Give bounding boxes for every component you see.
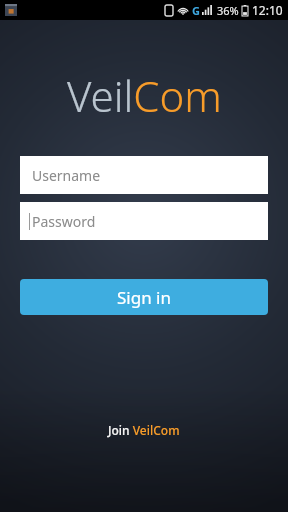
button[interactable]: Password [20, 202, 268, 240]
staticText: G [192, 3, 200, 18]
staticText: VeilCom [67, 67, 222, 124]
staticText: Password [32, 212, 96, 231]
staticText: Username [32, 166, 101, 185]
staticText: 36% [217, 3, 239, 18]
staticText: 12:10 [252, 2, 283, 18]
button[interactable]: Sign in [20, 279, 268, 315]
staticText: Sign in [117, 286, 171, 309]
button[interactable]: Username [20, 156, 268, 194]
button[interactable]: Join VeilCom [98, 418, 190, 442]
staticText: Join VeilCom [108, 422, 180, 438]
